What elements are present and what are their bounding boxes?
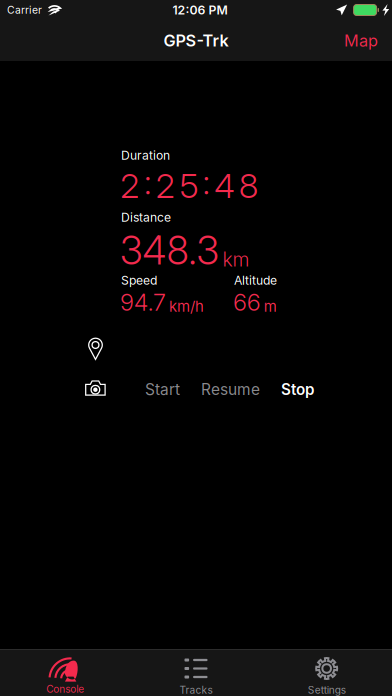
staticText: Stop bbox=[281, 380, 314, 399]
staticText: m bbox=[264, 297, 277, 315]
staticText: Carrier bbox=[7, 4, 42, 16]
staticText: Settings bbox=[308, 684, 346, 696]
button[interactable]: Start bbox=[140, 374, 185, 405]
button[interactable]: Locate bbox=[83, 332, 108, 365]
staticText: Map bbox=[344, 31, 378, 50]
staticText: 12:06 PM bbox=[172, 3, 227, 17]
staticText: Start bbox=[145, 380, 180, 399]
button[interactable]: Console bbox=[0, 650, 131, 696]
button[interactable]: Take photo bbox=[80, 375, 111, 401]
staticText: km/h bbox=[169, 297, 204, 315]
button[interactable]: Settings bbox=[261, 650, 392, 696]
staticText: 348.3 bbox=[120, 227, 219, 274]
staticText: 94.7 bbox=[120, 288, 166, 316]
button[interactable]: Resume bbox=[196, 374, 265, 405]
staticText: 66 bbox=[233, 288, 261, 316]
button[interactable]: Tracks bbox=[131, 650, 261, 696]
staticText: 2:25:48 bbox=[120, 165, 259, 206]
staticText: Altitude bbox=[234, 273, 277, 288]
button[interactable]: Map bbox=[330, 22, 392, 59]
staticText: Distance bbox=[121, 210, 171, 225]
staticText: GPS-Trk bbox=[163, 31, 228, 50]
staticText: Duration bbox=[121, 148, 170, 163]
staticText: km bbox=[223, 248, 250, 271]
staticText: Console bbox=[46, 683, 84, 695]
staticText: Speed bbox=[121, 273, 157, 288]
staticText: Tracks bbox=[179, 684, 212, 696]
button[interactable]: Stop bbox=[276, 374, 319, 405]
staticText: Resume bbox=[201, 380, 260, 399]
